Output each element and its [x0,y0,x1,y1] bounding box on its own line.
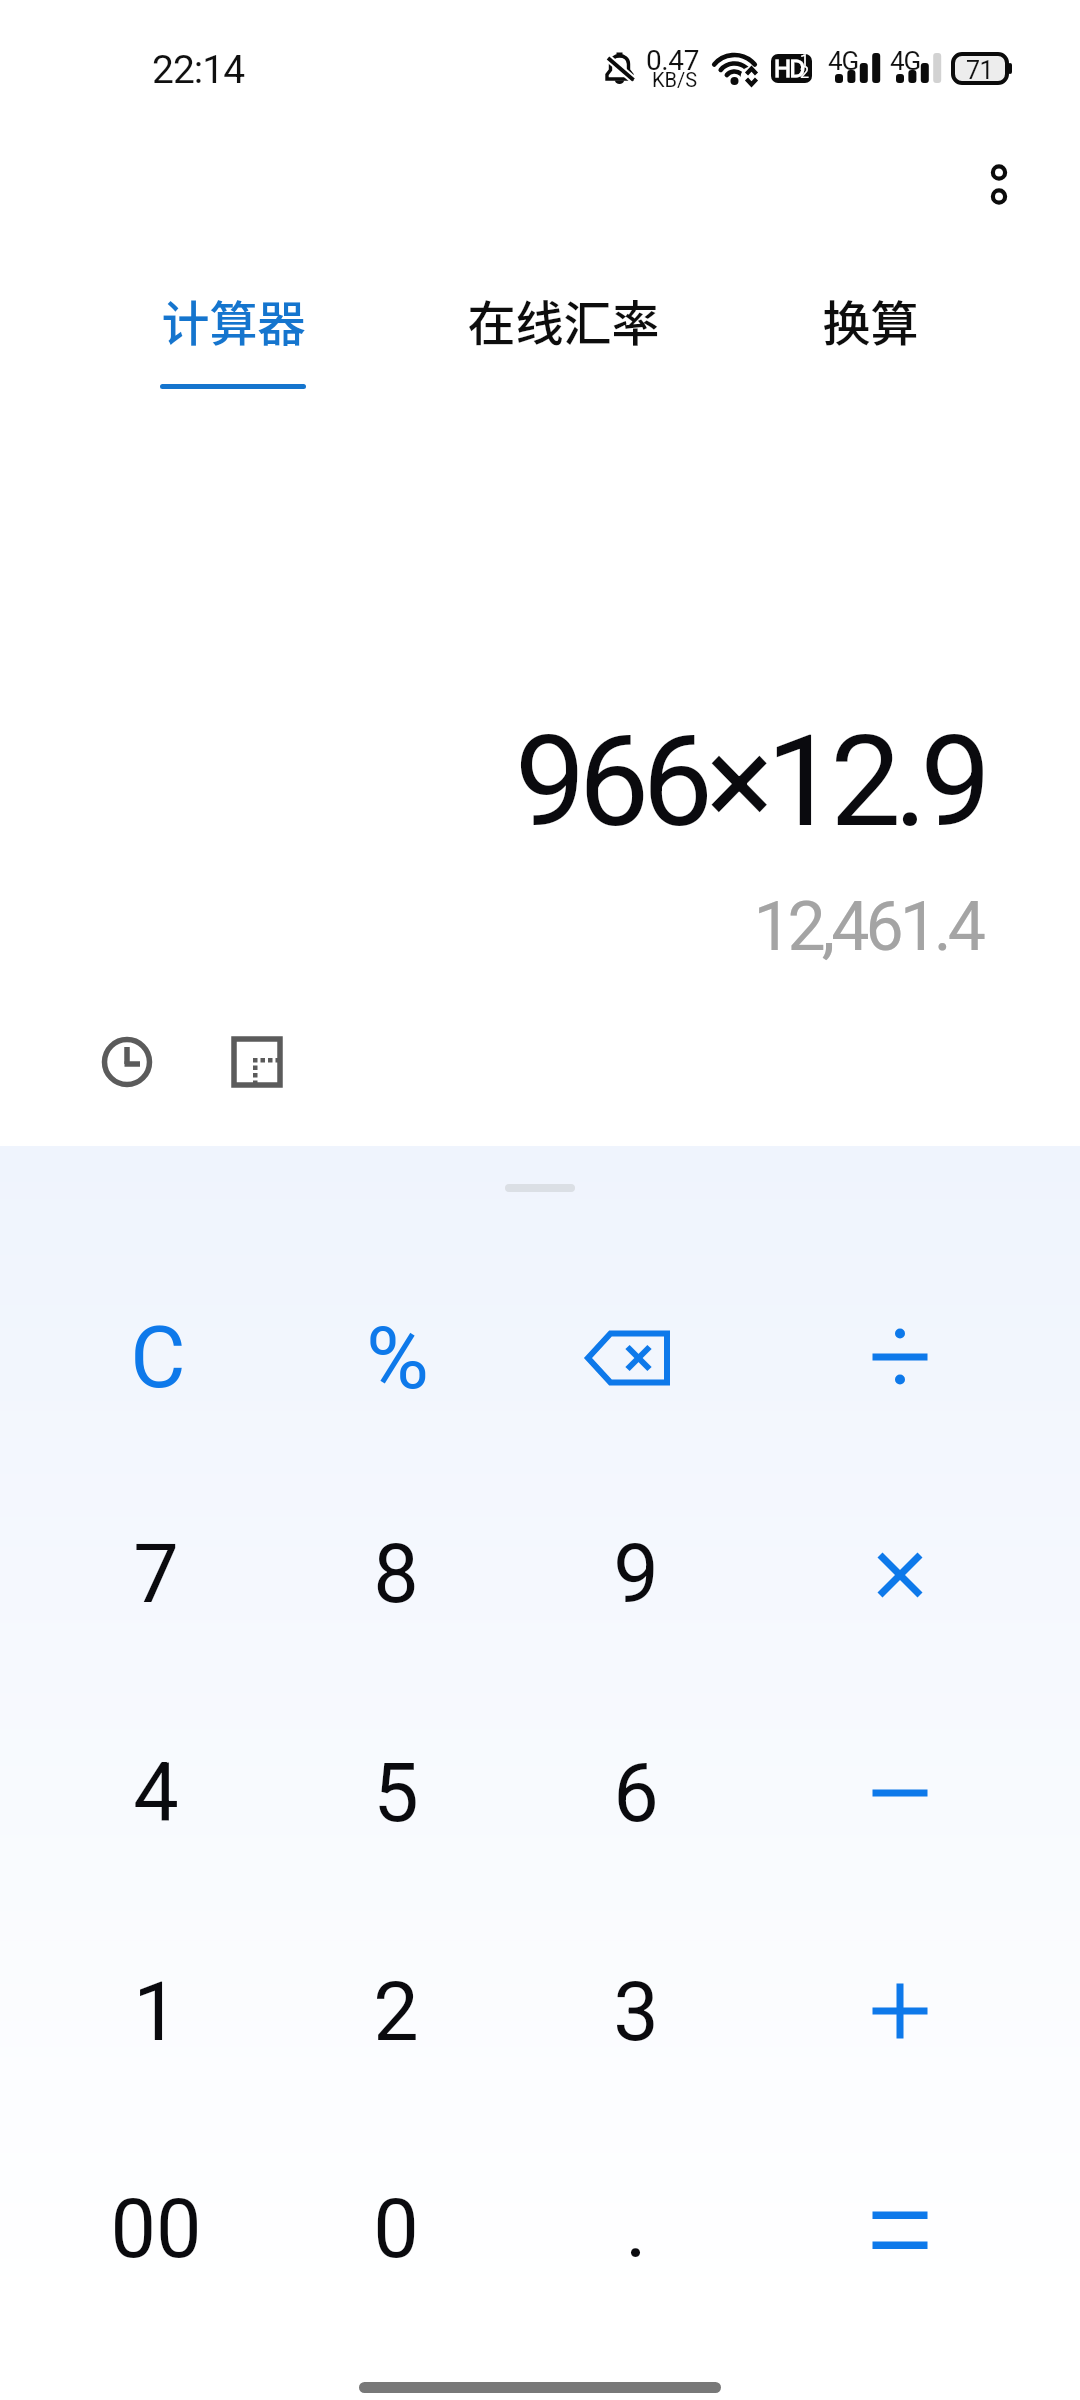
button[interactable]: History [81,1016,173,1108]
button[interactable]: 00 [36,2121,276,2337]
button[interactable]: 5 [276,1685,516,1901]
button[interactable]: 6 [516,1685,756,1901]
staticText: 6 [613,1746,659,1841]
staticText: KB/S [652,68,698,91]
staticText: 1 [800,51,809,70]
staticText: C [130,1308,183,1408]
button[interactable]: 8 [276,1466,516,1682]
button[interactable]: Backspace [516,1249,756,1465]
staticText: 换算 [822,285,919,355]
staticText: 9 [613,1527,659,1622]
button[interactable]: C [36,1250,276,1466]
button[interactable]: 0 [276,2121,516,2337]
button[interactable]: 7 [36,1466,276,1682]
button[interactable]: 1 [36,1904,276,2120]
button[interactable]: Multiply [780,1467,1020,1683]
staticText: 2 [373,1965,419,2060]
staticText: 2 [800,63,809,82]
staticText: 4G [828,46,859,76]
staticText: % [366,1308,426,1409]
button[interactable]: 计算器 [83,274,383,394]
staticText: 在线汇率 [467,285,660,355]
staticText: 00 [110,2182,202,2277]
staticText: 12,461.4 [0,887,982,967]
button[interactable]: 3 [516,1904,756,2120]
button[interactable]: Equals [780,2122,1020,2338]
staticText: 71 [966,56,994,85]
button[interactable]: . [516,2121,756,2337]
staticText: 3 [613,1965,659,2060]
staticText: 5 [373,1746,419,1841]
staticText: 计算器 [161,285,306,355]
button[interactable]: 换算 [720,274,1020,394]
staticText: 4 [133,1746,179,1841]
button[interactable]: Scientific keypad [211,1016,303,1108]
button[interactable]: 2 [276,1904,516,2120]
staticText: 8 [373,1527,419,1622]
button[interactable]: Add [780,1903,1020,2119]
staticText: 7 [133,1527,179,1622]
staticText: 966×12.9 [0,708,984,856]
button[interactable]: 4 [36,1685,276,1901]
staticText: . [625,2182,647,2277]
staticText: 0.47 [646,44,699,77]
button[interactable]: % [276,1250,516,1466]
staticText: HD [774,55,804,83]
button[interactable]: Subtract [780,1685,1020,1901]
button[interactable]: Divide [780,1249,1020,1465]
button[interactable]: 9 [516,1466,756,1682]
button[interactable]: More options [955,129,1043,217]
staticText: 22:14 [152,47,245,93]
staticText: 0 [373,2182,419,2277]
staticText: 4G [890,46,921,76]
staticText: 1 [133,1965,179,2060]
button[interactable]: 在线汇率 [413,274,713,394]
